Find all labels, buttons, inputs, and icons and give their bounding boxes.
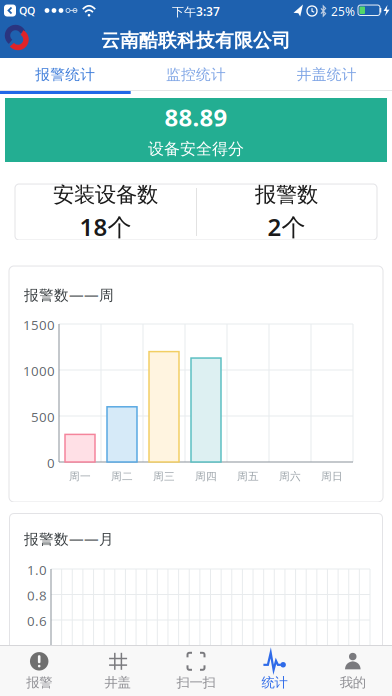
staticText: 88.89 [164, 101, 227, 133]
button[interactable]: 统计 [235, 645, 314, 696]
staticText: 井盖统计 [297, 65, 357, 83]
button[interactable]: 井盖 [78, 645, 157, 696]
staticText: 25% [331, 3, 355, 19]
staticText: 2个 [267, 211, 305, 243]
staticText: 设备安全得分 [148, 139, 244, 159]
staticText: 云南酷联科技有限公司 [101, 29, 291, 52]
staticText: QQ [19, 3, 35, 18]
button[interactable]: 报警统计 [0, 58, 131, 91]
staticText: 报警统计 [35, 65, 95, 83]
button[interactable]: 井盖统计 [261, 58, 392, 91]
staticText: 0 [47, 454, 55, 472]
staticText: 报警数——周 [24, 285, 114, 304]
button[interactable]: 报警 [0, 645, 78, 696]
staticText: 周日 [321, 470, 343, 483]
staticText: 报警数 [255, 181, 318, 208]
staticText: 1500 [23, 316, 55, 334]
button[interactable]: 我的 [314, 645, 392, 696]
staticText: 周一 [69, 470, 91, 483]
staticText: 500 [31, 408, 55, 426]
staticText: 周六 [279, 470, 301, 483]
staticText: 1.0 [27, 561, 47, 579]
staticText: 安装设备数 [53, 181, 158, 208]
staticText: 周三 [153, 470, 175, 483]
staticText: 0.6 [27, 612, 47, 630]
staticText: 我的 [340, 674, 366, 691]
staticText: 报警数——月 [24, 529, 114, 548]
staticText: 周二 [111, 470, 133, 483]
button[interactable]: 扫一扫 [157, 645, 235, 696]
button[interactable]: 监控统计 [131, 58, 261, 91]
staticText: 井盖 [105, 674, 131, 691]
staticText: 周五 [237, 470, 259, 483]
staticText: 下午3:37 [172, 3, 220, 19]
staticText: 周四 [195, 470, 217, 483]
staticText: 报警 [26, 674, 52, 691]
staticText: 监控统计 [166, 65, 226, 83]
staticText: 0.8 [27, 586, 47, 604]
staticText: 扫一扫 [176, 674, 215, 691]
staticText: 统计 [261, 674, 287, 691]
staticText: 18个 [79, 211, 131, 243]
staticText: 1000 [23, 362, 55, 380]
